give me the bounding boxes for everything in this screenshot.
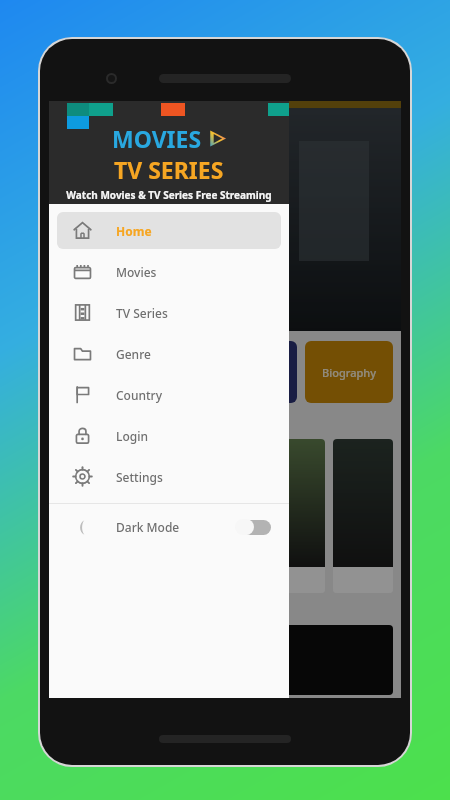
button[interactable]: Genre — [57, 335, 281, 372]
staticText: MOVIES — [112, 123, 202, 154]
other: Dark Mode toggle — [235, 519, 271, 535]
button[interactable]: Login — [57, 417, 281, 454]
button[interactable]: Country — [57, 376, 281, 413]
staticText: Settings — [116, 469, 163, 485]
button[interactable]: Dark Mode — [49, 504, 289, 550]
staticText: TV Series — [116, 305, 168, 321]
staticText: Login — [116, 428, 148, 444]
staticText: TV SERIES — [114, 154, 224, 185]
staticText: Genre — [116, 346, 151, 362]
staticText: Biography — [322, 365, 376, 380]
button[interactable]: TV Series — [57, 294, 281, 331]
staticText: Watch Movies & TV Series Free Streaming — [66, 188, 272, 202]
button[interactable]: Movies — [57, 253, 281, 290]
button[interactable]: Settings — [57, 458, 281, 495]
button[interactable]: Home — [57, 212, 281, 249]
staticText: Home — [116, 223, 152, 239]
staticText: Country — [116, 387, 163, 403]
staticText: Dark Mode — [116, 519, 180, 535]
staticText: Movies — [116, 264, 157, 280]
